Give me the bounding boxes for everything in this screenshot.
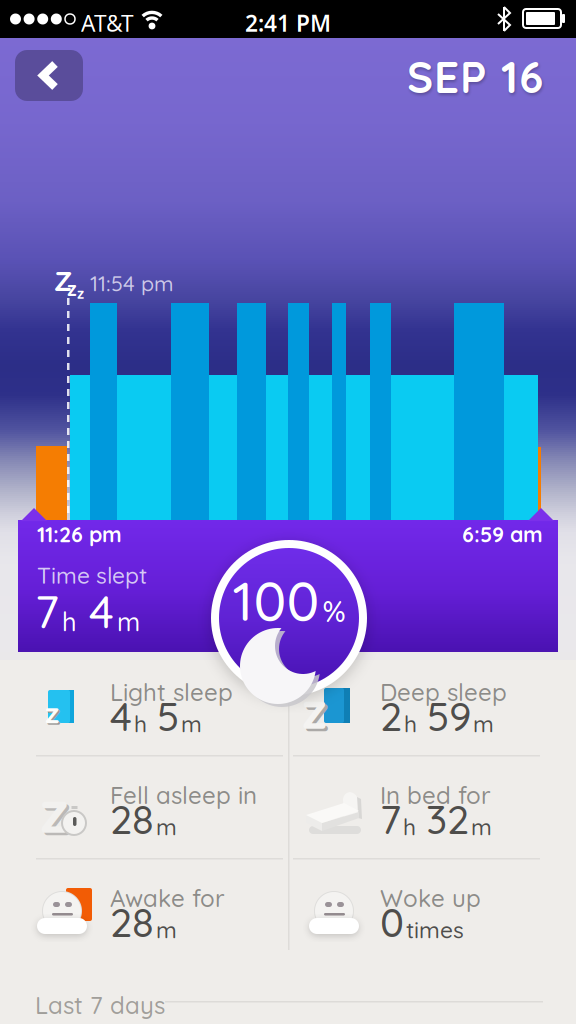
staticText: In bed for [380, 780, 491, 810]
staticText: z [42, 776, 70, 850]
staticText: 4 [89, 583, 114, 640]
staticText: 5 [157, 691, 179, 741]
staticText: Fell asleep in [110, 780, 257, 810]
staticText: 2 [380, 691, 402, 741]
staticText: 2:41 PM [245, 8, 331, 38]
staticText: z [67, 276, 77, 301]
staticText: Time slept [37, 561, 147, 589]
staticText: z [77, 284, 84, 302]
staticText: 11:54 pm [90, 270, 174, 297]
staticText: SEP 16 [407, 49, 543, 104]
staticText: 32 [426, 794, 469, 844]
staticText: m [471, 813, 492, 841]
staticText: 11:26 pm [37, 521, 122, 548]
staticText: 7 [380, 794, 401, 844]
staticText: z [302, 678, 327, 741]
staticText: AT&T [81, 8, 134, 38]
button[interactable]: Back [15, 50, 83, 101]
staticText: Z [54, 263, 72, 298]
staticText: 28 [110, 794, 154, 844]
staticText: 28 [110, 897, 154, 947]
staticText: h [134, 710, 147, 738]
staticText: z [46, 695, 60, 732]
staticText: h [404, 710, 417, 738]
staticText: Last 7 days [35, 990, 165, 1020]
staticText: z [304, 680, 329, 744]
staticText: 6:59 am [462, 521, 543, 548]
staticText: m [473, 710, 494, 738]
staticText: z [40, 774, 68, 847]
staticText: m [156, 813, 177, 841]
staticText: m [181, 710, 202, 738]
staticText: h [62, 606, 77, 638]
staticText: Woke up [380, 883, 481, 913]
staticText: m [156, 916, 177, 944]
staticText: 4 [110, 691, 132, 741]
staticText: % [322, 593, 345, 629]
staticText: z [45, 694, 59, 731]
staticText: Deep sleep [380, 677, 507, 707]
staticText: 59 [427, 691, 471, 741]
staticText: m [117, 606, 140, 638]
staticText: h [403, 813, 416, 841]
staticText: times [406, 916, 464, 944]
staticText: 0 [380, 897, 404, 947]
staticText: 100 [232, 566, 319, 634]
staticText: Light sleep [110, 677, 233, 707]
staticText: 7 [35, 583, 59, 640]
staticText: Awake for [110, 883, 225, 913]
